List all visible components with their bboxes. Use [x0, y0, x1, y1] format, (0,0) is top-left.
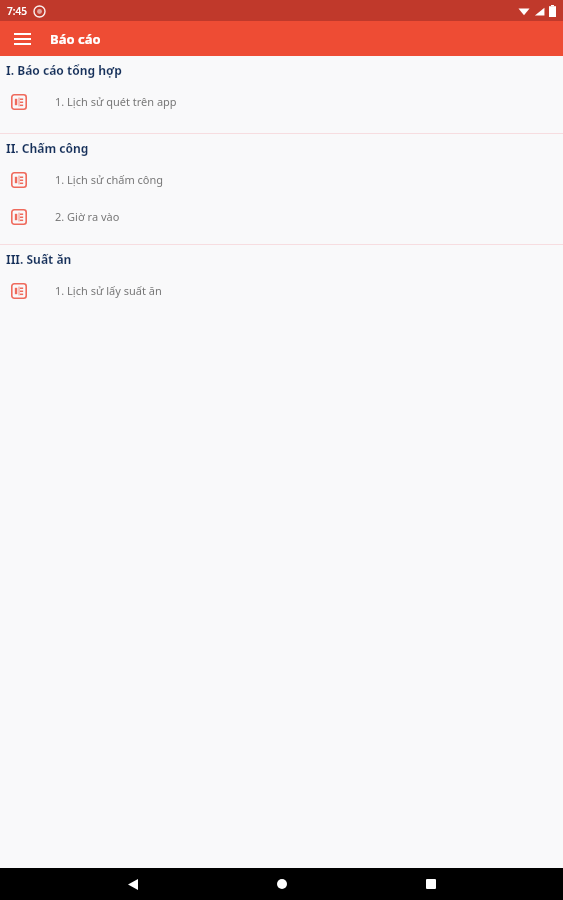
staticText: II. Chấm công: [6, 140, 89, 156]
button[interactable]: Back: [116, 868, 150, 900]
button[interactable]: 1. Lịch sử quét trên app: [0, 83, 563, 120]
staticText: III. Suất ăn: [6, 251, 72, 267]
button[interactable]: 1. Lịch sử chấm công: [0, 161, 563, 198]
button[interactable]: Home: [265, 868, 299, 900]
button[interactable]: 2. Giờ ra vào: [0, 198, 563, 235]
staticText: 1. Lịch sử chấm công: [55, 172, 164, 187]
staticText: I. Báo cáo tổng hợp: [6, 62, 122, 78]
staticText: 2. Giờ ra vào: [55, 209, 120, 224]
staticText: 1. Lịch sử lấy suất ăn: [55, 283, 162, 298]
staticText: 1. Lịch sử quét trên app: [55, 94, 177, 109]
staticText: 7:45: [7, 4, 27, 18]
button[interactable]: Recent apps: [414, 868, 448, 900]
button[interactable]: Open navigation menu: [6, 23, 38, 55]
staticText: Báo cáo: [50, 30, 101, 48]
button[interactable]: 1. Lịch sử lấy suất ăn: [0, 272, 563, 309]
